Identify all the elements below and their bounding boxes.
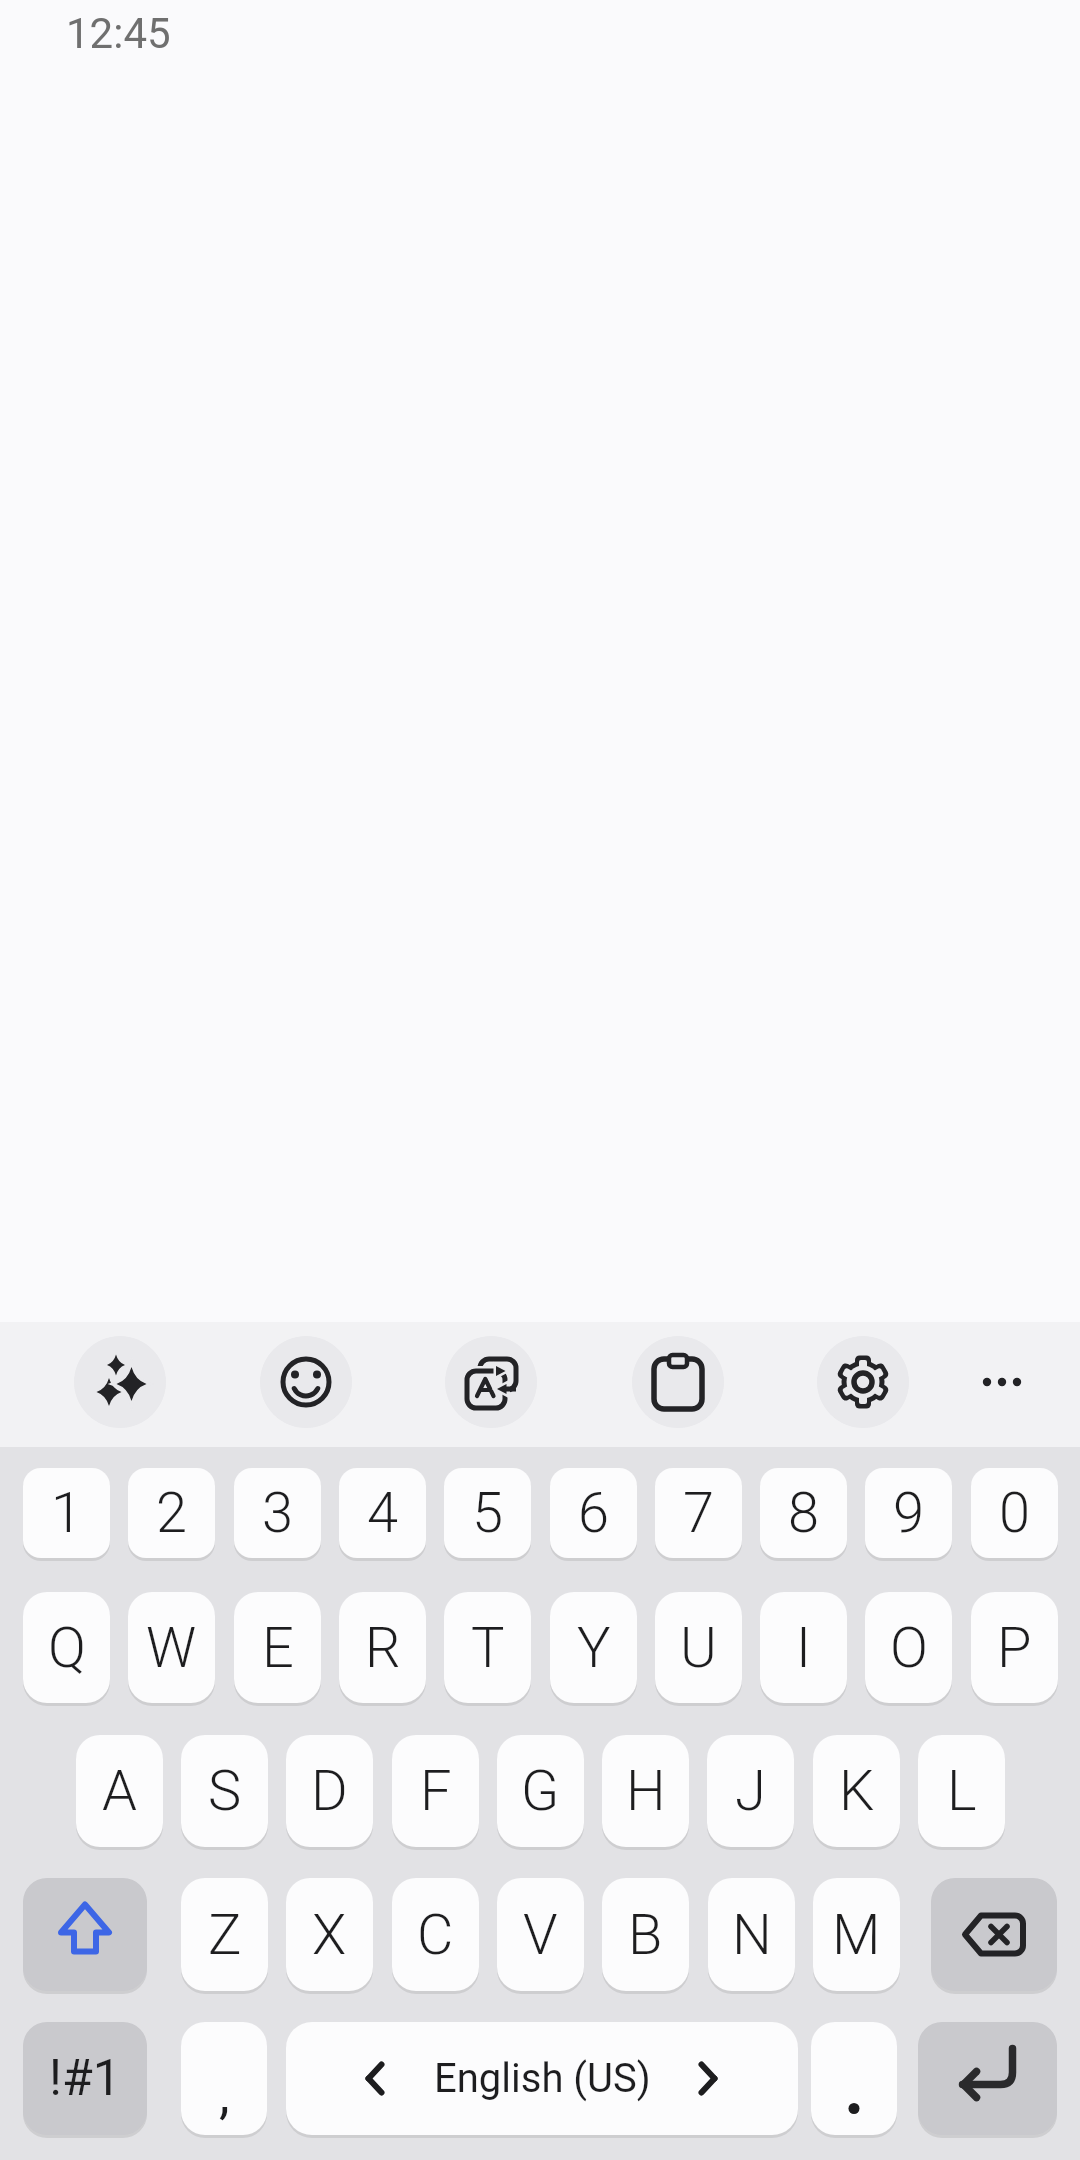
staticText: M (832, 1902, 881, 1968)
staticText: E (262, 1615, 294, 1681)
staticText: 5 (472, 1480, 504, 1546)
button[interactable] (817, 1336, 909, 1428)
staticText: 2 (156, 1480, 188, 1546)
staticText: V (523, 1902, 558, 1968)
staticText: Z (208, 1902, 242, 1968)
staticText: O (890, 1615, 928, 1681)
button[interactable]: Z (181, 1878, 268, 1991)
staticText: Y (577, 1615, 611, 1681)
button[interactable]: English (US) (286, 2022, 798, 2135)
staticText: A (102, 1758, 137, 1824)
button[interactable]: Q (23, 1592, 110, 1703)
button[interactable]: 3 (234, 1468, 321, 1558)
staticText: J (735, 1758, 766, 1824)
button[interactable] (632, 1336, 724, 1428)
button[interactable] (74, 1336, 166, 1428)
button[interactable]: N (708, 1878, 795, 1991)
staticText: 4 (367, 1480, 399, 1546)
button[interactable]: C (392, 1878, 479, 1991)
staticText: , (219, 2063, 230, 2126)
button[interactable] (918, 2022, 1057, 2135)
staticText: P (997, 1615, 1032, 1681)
button[interactable]: J (707, 1735, 794, 1847)
button[interactable]: M (813, 1878, 900, 1991)
staticText: D (311, 1758, 348, 1824)
staticText: 9 (893, 1480, 925, 1546)
staticText: !#1 (49, 2049, 121, 2108)
staticText: 3 (262, 1480, 294, 1546)
staticText: C (417, 1902, 454, 1968)
staticText: K (839, 1758, 875, 1824)
button[interactable]: 8 (760, 1468, 847, 1558)
button[interactable]: X (286, 1878, 373, 1991)
button[interactable] (931, 1878, 1057, 1991)
button[interactable]: 1 (23, 1468, 110, 1558)
staticText: N (732, 1902, 772, 1968)
button[interactable]: F (392, 1735, 479, 1847)
button[interactable]: 9 (865, 1468, 952, 1558)
staticText: I (796, 1615, 811, 1681)
button[interactable]: R (339, 1592, 426, 1703)
button[interactable]: V (497, 1878, 584, 1991)
staticText: S (208, 1758, 242, 1824)
staticText: 1 (51, 1480, 83, 1546)
button[interactable]: 0 (971, 1468, 1058, 1558)
button[interactable]: B (602, 1878, 689, 1991)
button[interactable]: L (918, 1735, 1005, 1847)
staticText: 6 (578, 1480, 610, 1546)
button[interactable]: I (760, 1592, 847, 1703)
button[interactable]: 6 (550, 1468, 637, 1558)
button[interactable] (811, 2022, 897, 2135)
staticText: F (420, 1758, 452, 1824)
button[interactable]: T (444, 1592, 531, 1703)
button[interactable]: Y (550, 1592, 637, 1703)
button[interactable]: S (181, 1735, 268, 1847)
staticText: 12:45 (66, 9, 171, 58)
button[interactable]: P (971, 1592, 1058, 1703)
staticText: T (471, 1615, 505, 1681)
staticText: Q (48, 1615, 86, 1681)
button[interactable]: E (234, 1592, 321, 1703)
button[interactable]: O (865, 1592, 952, 1703)
button[interactable]: 4 (339, 1468, 426, 1558)
button[interactable]: D (286, 1735, 373, 1847)
button[interactable]: A (76, 1735, 163, 1847)
staticText: U (680, 1615, 717, 1681)
button[interactable]: G (497, 1735, 584, 1847)
staticText: 7 (683, 1480, 715, 1546)
staticText: X (312, 1902, 347, 1968)
button[interactable]: W (128, 1592, 215, 1703)
button[interactable]: H (602, 1735, 689, 1847)
staticText: G (521, 1758, 560, 1824)
button[interactable]: K (813, 1735, 900, 1847)
button[interactable]: U (655, 1592, 742, 1703)
button[interactable]: !#1 (23, 2022, 147, 2135)
staticText: 0 (999, 1480, 1031, 1546)
button[interactable] (960, 1336, 1044, 1428)
button[interactable]: 5 (444, 1468, 531, 1558)
button[interactable] (445, 1336, 537, 1428)
staticText: L (947, 1758, 977, 1824)
button[interactable]: , (181, 2022, 267, 2135)
button[interactable] (23, 1878, 147, 1991)
button[interactable]: 7 (655, 1468, 742, 1558)
staticText: W (146, 1615, 197, 1681)
staticText: H (626, 1758, 666, 1824)
button[interactable] (260, 1336, 352, 1428)
staticText: R (365, 1615, 401, 1681)
button[interactable]: 2 (128, 1468, 215, 1558)
staticText: English (US) (434, 2055, 651, 2102)
staticText: 8 (788, 1480, 820, 1546)
staticText: B (628, 1902, 663, 1968)
